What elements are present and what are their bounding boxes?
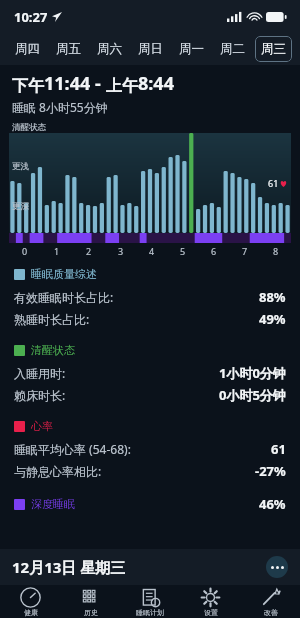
button[interactable]: 健康 xyxy=(0,585,60,618)
button[interactable]: 睡眠质量综述 xyxy=(14,267,286,281)
button[interactable]: 改善 xyxy=(240,585,300,618)
button[interactable]: 赖床时长: xyxy=(14,386,286,404)
button[interactable]: 周日 xyxy=(132,36,169,62)
staticText: 4 xyxy=(149,245,155,257)
staticText: 睡眠平均心率 (54-68): xyxy=(14,441,131,457)
staticText: 周三 xyxy=(261,41,286,57)
button[interactable]: 设置 xyxy=(180,585,240,618)
staticText: 0小时5分钟 xyxy=(219,386,286,404)
staticText: 下午 xyxy=(12,76,44,96)
staticText: 睡眠质量综述 xyxy=(31,267,97,281)
staticText: 7 xyxy=(242,245,248,257)
button[interactable]: 熟睡时长占比: xyxy=(14,310,286,328)
staticText: 12月13日 星期三 xyxy=(12,557,126,577)
staticText: 3 xyxy=(118,245,124,257)
staticText: 清醒状态 xyxy=(12,122,46,133)
button[interactable]: More options xyxy=(266,556,288,578)
staticText: 61 xyxy=(268,177,279,189)
button[interactable]: 有效睡眠时长占比: xyxy=(14,288,286,306)
button[interactable]: 与静息心率相比: xyxy=(14,462,286,480)
staticText: 健康 xyxy=(24,608,38,617)
button[interactable]: 深度睡眠 xyxy=(14,495,286,513)
staticText: 深度睡眠 xyxy=(31,497,75,511)
staticText: 0 xyxy=(22,245,28,257)
staticText: 61 xyxy=(271,440,286,458)
staticText: 6 xyxy=(211,245,217,257)
staticText: 有效睡眠时长占比: xyxy=(14,289,114,305)
staticText: 心率 xyxy=(31,419,53,433)
staticText: 与静息心率相比: xyxy=(14,463,102,479)
staticText: 入睡用时: xyxy=(14,365,66,381)
button[interactable]: 周五 xyxy=(50,36,87,62)
staticText: 1小时0分钟 xyxy=(219,364,286,382)
staticText: 清醒状态 xyxy=(31,343,75,357)
staticText: 1 xyxy=(54,245,60,257)
staticText: 周五 xyxy=(56,41,81,57)
staticText: 5 xyxy=(180,245,186,257)
button[interactable]: 周三 xyxy=(255,36,292,62)
button[interactable]: 周四 xyxy=(8,36,46,62)
button[interactable]: 周六 xyxy=(91,36,128,62)
button[interactable]: 入睡用时: xyxy=(14,364,286,382)
staticText: 88% xyxy=(259,288,286,306)
staticText: 更深 xyxy=(12,201,29,212)
staticText: 周六 xyxy=(97,41,122,57)
staticText: 49% xyxy=(259,310,286,328)
staticText: 11:44 - xyxy=(44,71,106,96)
staticText: 改善 xyxy=(264,608,278,617)
staticText: 8:44 xyxy=(138,71,174,96)
staticText: 2 xyxy=(86,245,92,257)
staticText: 上午 xyxy=(106,76,138,96)
button[interactable]: 周一 xyxy=(173,36,210,62)
staticText: 历史 xyxy=(84,608,98,617)
button[interactable]: 清醒状态 xyxy=(14,343,286,357)
button[interactable]: 睡眠计划 xyxy=(120,585,180,618)
button[interactable]: 历史 xyxy=(60,585,120,618)
staticText: 周二 xyxy=(220,41,245,57)
staticText: -27% xyxy=(255,462,286,480)
staticText: 睡眠 8小时55分钟 xyxy=(12,99,108,115)
staticText: 周一 xyxy=(179,41,204,57)
staticText: 周四 xyxy=(15,41,40,57)
button[interactable]: 心率 xyxy=(14,419,286,433)
staticText: 睡眠计划 xyxy=(136,608,164,617)
staticText: 熟睡时长占比: xyxy=(14,311,90,327)
staticText: 更浅 xyxy=(12,161,29,172)
staticText: 赖床时长: xyxy=(14,387,66,403)
staticText: 8 xyxy=(273,245,279,257)
staticText: 周日 xyxy=(138,41,163,57)
button[interactable]: 睡眠平均心率 (54-68): xyxy=(14,440,286,458)
staticText: 设置 xyxy=(204,608,218,617)
button[interactable]: 周二 xyxy=(214,36,251,62)
staticText: 10:27 xyxy=(14,8,48,26)
staticText: 46% xyxy=(259,495,286,513)
